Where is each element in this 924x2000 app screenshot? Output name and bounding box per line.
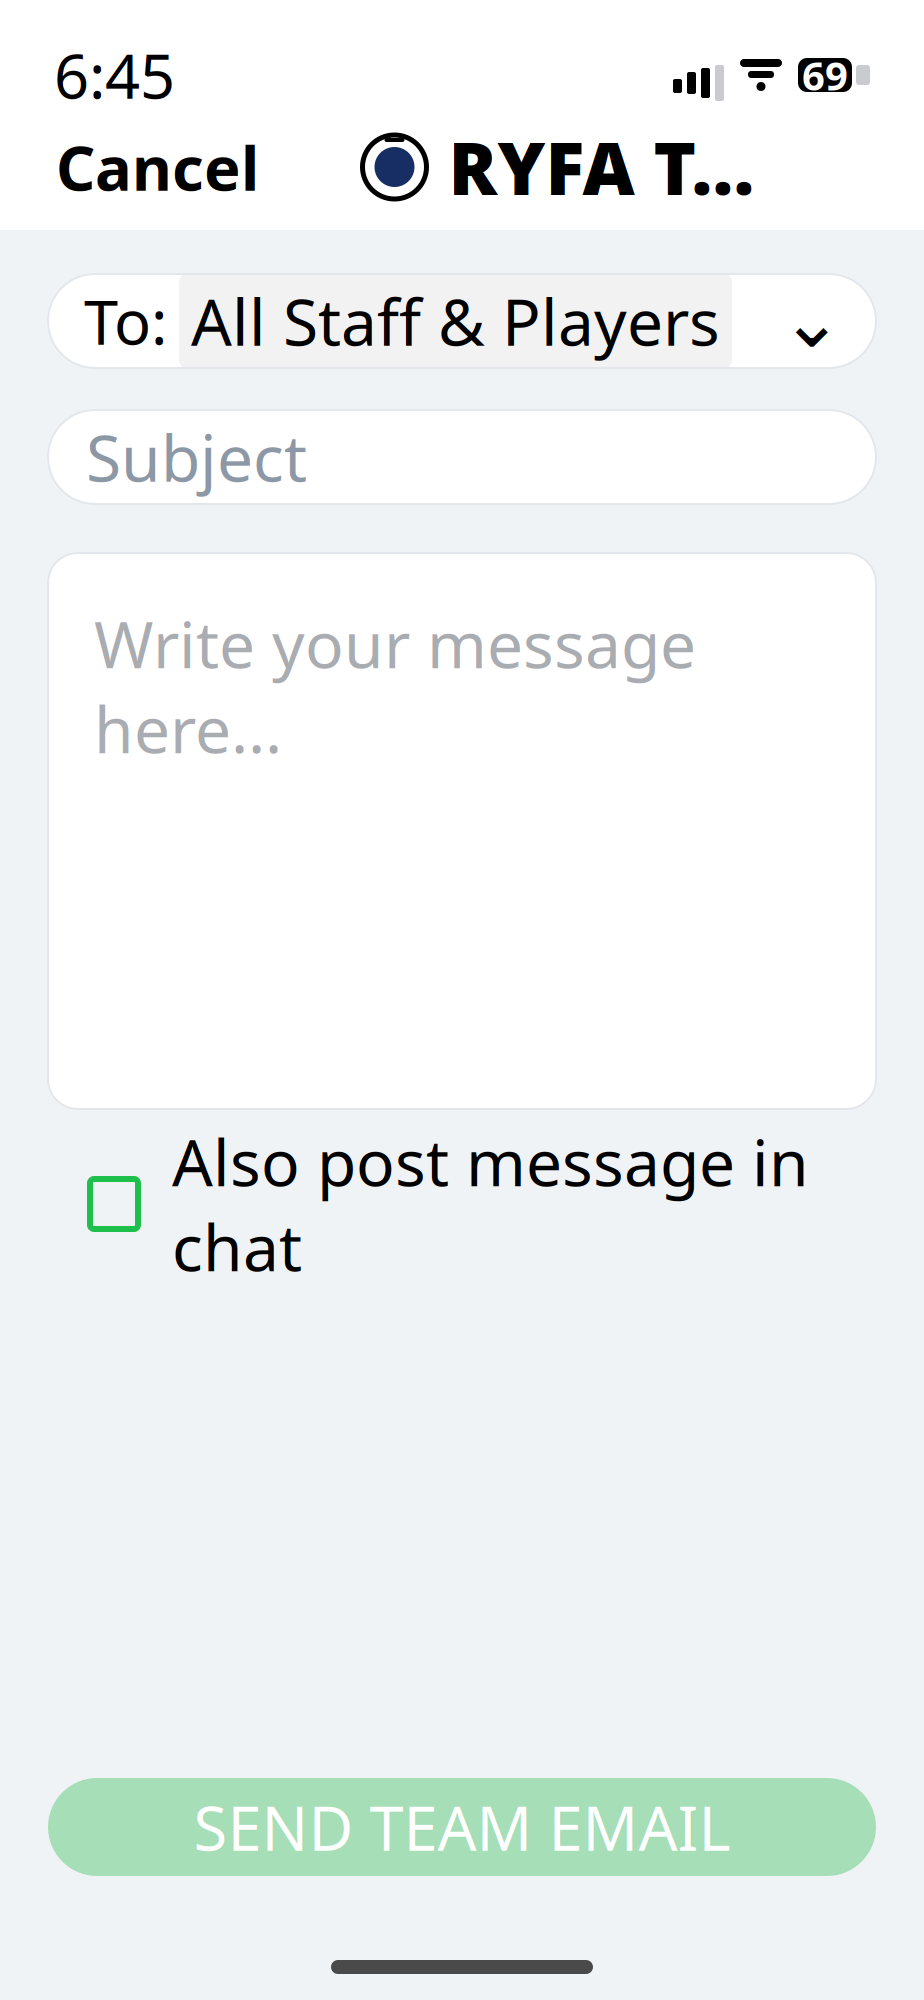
staticText: Also post message in chat <box>172 1119 809 1289</box>
button[interactable]: Cancel <box>48 106 267 228</box>
staticText: All Staff & Players <box>191 278 720 363</box>
staticText: Cancel <box>56 126 259 208</box>
staticText: 69 <box>802 48 848 101</box>
staticText: Write your message here... <box>94 601 696 771</box>
staticText: 6:45 <box>54 34 175 116</box>
staticText: To: <box>84 280 167 362</box>
button[interactable]: SEND TEAM EMAIL <box>48 1778 876 1876</box>
button[interactable]: Write your message here... <box>48 553 876 1109</box>
button[interactable]: Also post message in chat <box>48 1161 876 1247</box>
staticText: Subject <box>86 414 307 499</box>
button[interactable]: To: <box>48 274 876 368</box>
button[interactable]: Subject <box>48 410 876 504</box>
staticText: ⌄ <box>780 279 843 363</box>
staticText: RYFA T... <box>448 119 754 215</box>
staticText: SEND TEAM EMAIL <box>193 1786 730 1868</box>
